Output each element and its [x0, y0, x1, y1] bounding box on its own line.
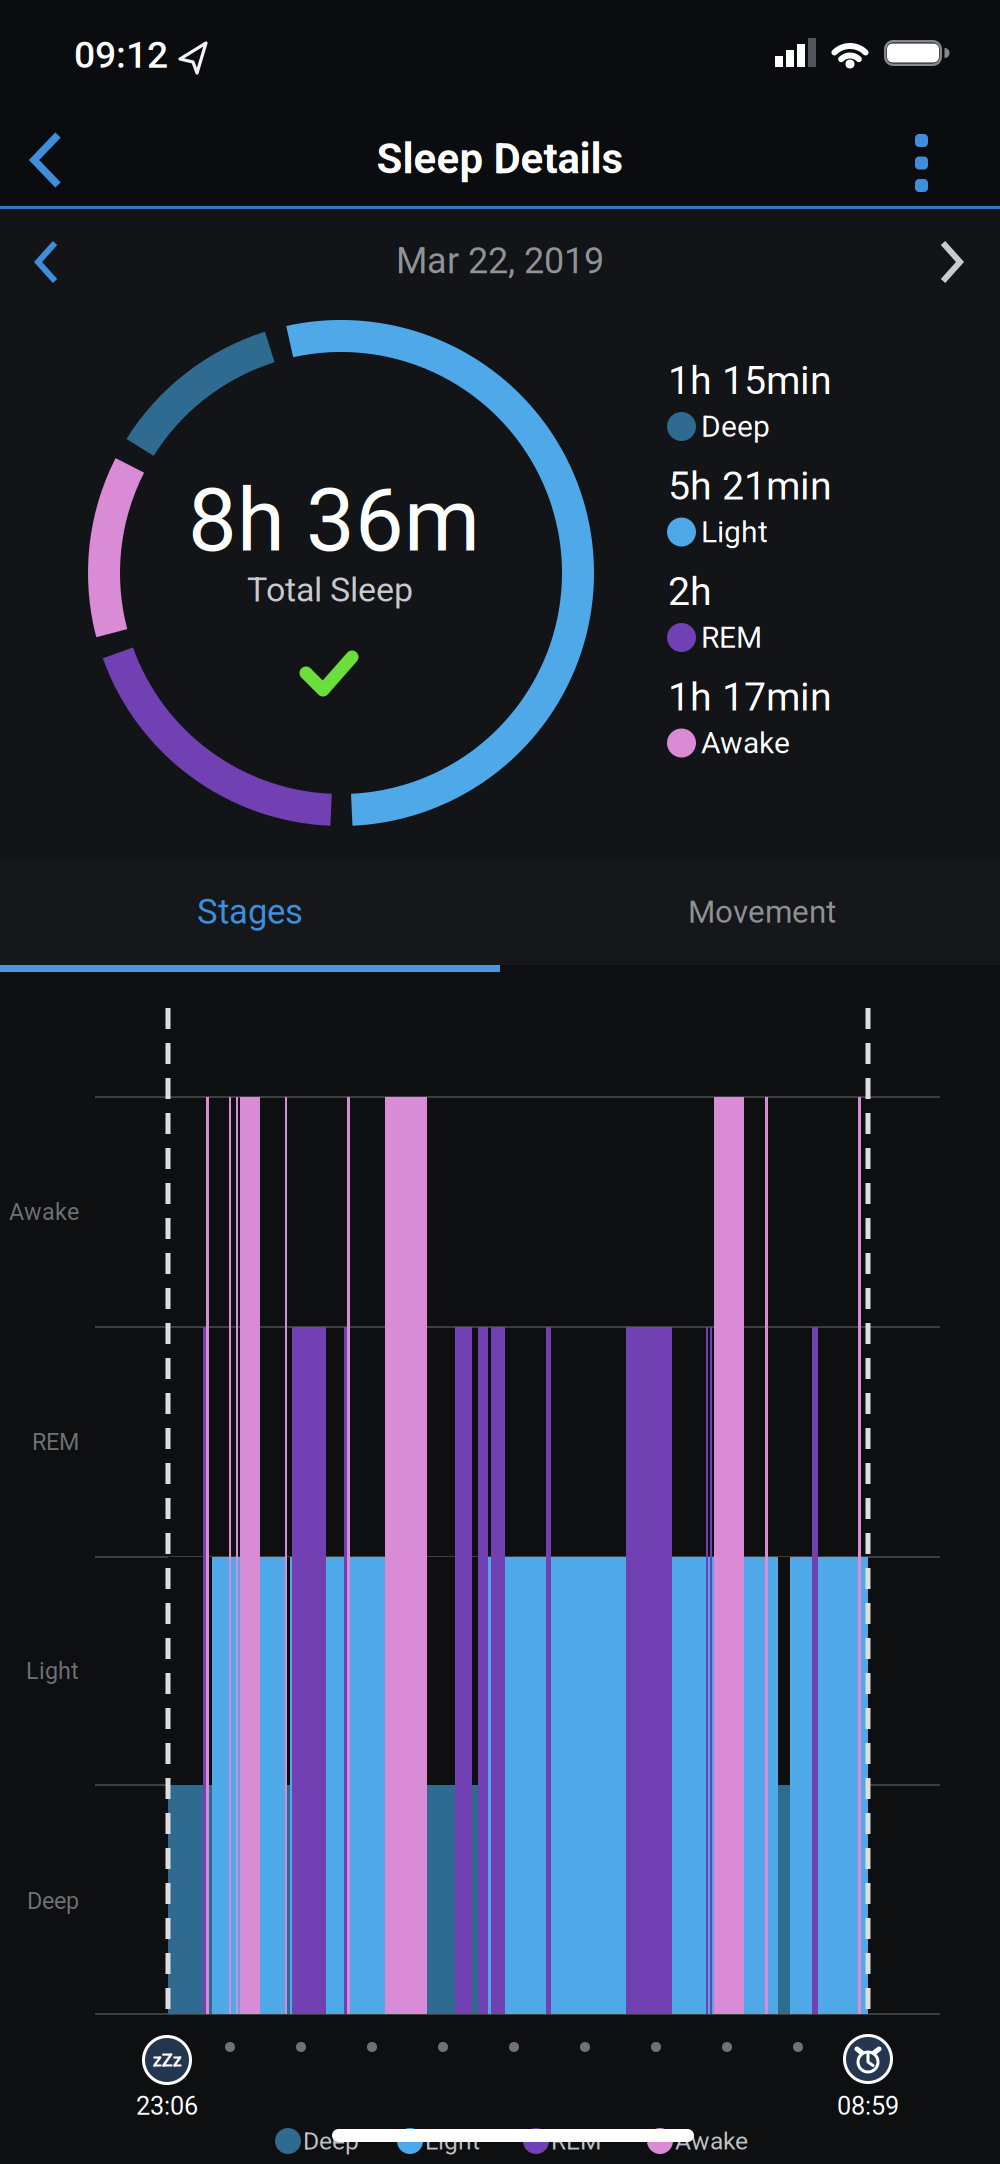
- button[interactable]: Stages: [0, 860, 500, 964]
- staticText: REM: [701, 620, 762, 655]
- staticText: 09:12: [74, 33, 168, 77]
- staticText: 5h 21min: [668, 463, 832, 509]
- staticText: Awake: [9, 1198, 79, 1226]
- staticText: 1h 17min: [668, 674, 832, 720]
- staticText: 8h 36m: [188, 470, 480, 572]
- staticText: Stages: [197, 892, 303, 932]
- staticText: REM: [551, 2126, 602, 2155]
- staticText: Mar 22, 2019: [396, 240, 604, 282]
- staticText: zZz: [152, 2049, 181, 2071]
- staticText: Light: [701, 514, 768, 550]
- staticText: Sleep Details: [376, 134, 623, 184]
- button[interactable]: [8, 222, 88, 302]
- staticText: Light: [425, 2126, 480, 2155]
- staticText: Total Sleep: [247, 570, 413, 610]
- staticText: Deep: [27, 1887, 79, 1915]
- button[interactable]: Movement: [512, 860, 1000, 964]
- button[interactable]: [910, 222, 990, 302]
- button[interactable]: [1, 100, 91, 220]
- staticText: Deep: [701, 409, 770, 444]
- staticText: 1h 15min: [668, 357, 832, 404]
- staticText: 2h: [668, 568, 712, 615]
- staticText: REM: [32, 1428, 79, 1456]
- staticText: Awake: [701, 725, 790, 761]
- button[interactable]: [886, 108, 956, 218]
- staticText: Movement: [688, 894, 836, 930]
- staticText: Awake: [675, 2126, 748, 2155]
- staticText: 08:59: [837, 2091, 899, 2121]
- button[interactable]: zZz: [142, 2035, 192, 2085]
- staticText: Light: [26, 1657, 79, 1685]
- button[interactable]: [843, 2034, 893, 2084]
- staticText: 23:06: [136, 2091, 198, 2121]
- staticText: Deep: [303, 2126, 359, 2155]
